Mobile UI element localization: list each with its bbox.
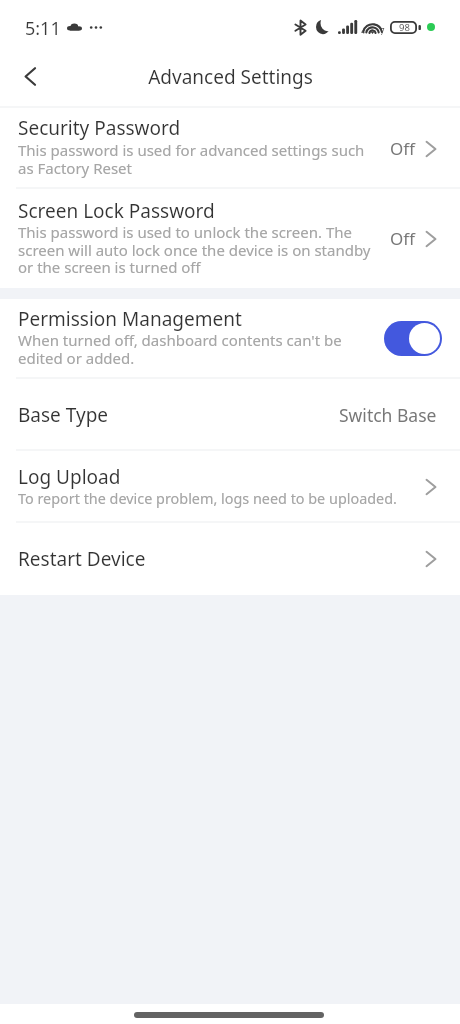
button[interactable]: Log Upload <box>0 451 460 523</box>
button[interactable]: Restart Device <box>0 523 460 595</box>
staticText: Base Type <box>18 402 109 428</box>
staticText: When turned off, dashboard contents can'… <box>18 330 358 368</box>
staticText: Screen Lock Password <box>18 198 374 224</box>
button[interactable]: Security Password <box>0 108 460 189</box>
staticText: 98 <box>399 21 410 34</box>
staticText: Permission Management <box>18 306 358 332</box>
staticText: 7 <box>380 26 385 37</box>
staticText: Log Upload <box>18 464 413 490</box>
button[interactable]: Permission Management <box>0 299 460 379</box>
staticText: This password is used to unlock the scre… <box>18 222 374 277</box>
staticText: 5:11 <box>25 16 61 41</box>
button[interactable]: Base Type <box>0 379 460 451</box>
button[interactable]: Back <box>0 50 58 106</box>
staticText: Off <box>390 137 415 160</box>
staticText: Security Password <box>18 115 368 141</box>
button[interactable]: Permission Management <box>384 321 442 356</box>
staticText: This password is used for advanced setti… <box>18 140 368 178</box>
staticText: Restart Device <box>18 546 146 572</box>
staticText: Advanced Settings <box>148 64 313 90</box>
staticText: Switch Base <box>339 403 437 427</box>
staticText: Off <box>390 227 415 250</box>
button[interactable]: Screen Lock Password <box>0 189 460 288</box>
staticText: 4 <box>361 27 366 37</box>
staticText: To report the device problem, logs need … <box>18 489 413 509</box>
